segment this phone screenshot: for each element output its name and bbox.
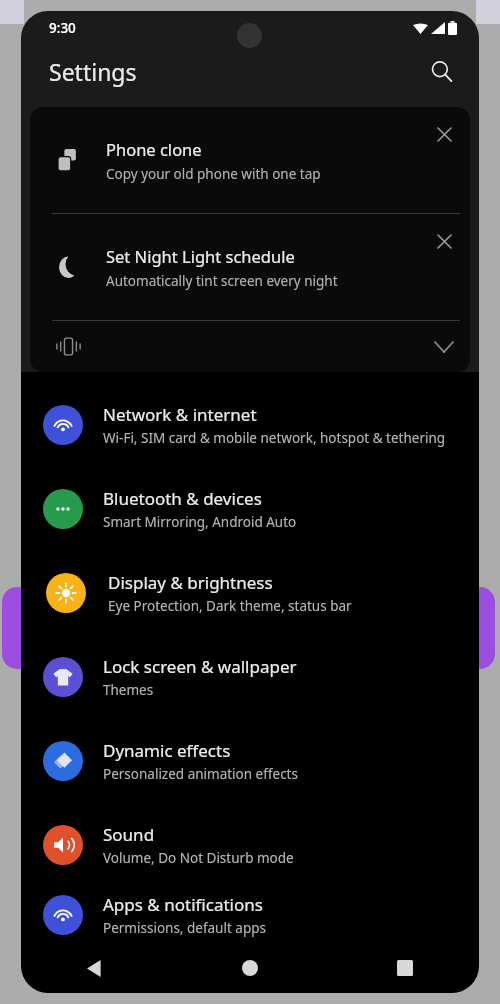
button[interactable]: Sound — [21, 803, 479, 887]
button[interactable]: Set Night Light schedule — [30, 214, 470, 320]
staticText: Volume, Do Not Disturb mode — [103, 849, 294, 867]
button[interactable]: Dismiss — [424, 221, 464, 261]
staticText: Smart Mirroring, Android Auto — [103, 513, 297, 531]
staticText: Display & brightness — [108, 571, 273, 594]
staticText: Set Night Light schedule — [106, 245, 295, 267]
button[interactable]: Network & internet — [21, 383, 479, 467]
button[interactable]: Dynamic effects — [21, 719, 479, 803]
button[interactable]: Recents — [383, 946, 427, 990]
staticText: Sound — [103, 823, 155, 846]
button[interactable]: Bluetooth & devices — [21, 467, 479, 551]
button[interactable]: Lock screen & wallpaper — [21, 635, 479, 719]
staticText: Automatically tint screen every night — [106, 272, 338, 290]
button[interactable]: Phone clone — [30, 107, 470, 213]
staticText: Apps & notifications — [103, 893, 263, 916]
button[interactable]: Expand — [424, 327, 464, 367]
staticText: Eye Protection, Dark theme, status bar — [108, 597, 352, 615]
button[interactable]: Expand — [30, 321, 470, 372]
staticText: Dynamic effects — [103, 739, 231, 762]
staticText: Wi-Fi, SIM card & mobile network, hotspo… — [103, 429, 446, 447]
staticText: Network & internet — [103, 403, 257, 426]
staticText: Themes — [103, 681, 154, 699]
staticText: Personalized animation effects — [103, 765, 298, 783]
staticText: Phone clone — [106, 138, 202, 160]
button[interactable]: Home — [228, 946, 272, 990]
staticText: Copy your old phone with one tap — [106, 165, 321, 183]
button[interactable]: Back — [73, 946, 117, 990]
button[interactable]: Dismiss — [424, 114, 464, 154]
button[interactable]: Apps & notifications — [21, 887, 479, 943]
staticText: Lock screen & wallpaper — [103, 655, 297, 678]
staticText: 9:30 — [49, 19, 76, 37]
button[interactable]: Search — [419, 49, 463, 93]
button[interactable]: Display & brightness — [21, 551, 479, 635]
staticText: Permissions, default apps — [103, 919, 266, 937]
staticText: Settings — [49, 56, 137, 87]
staticText: Bluetooth & devices — [103, 487, 262, 510]
